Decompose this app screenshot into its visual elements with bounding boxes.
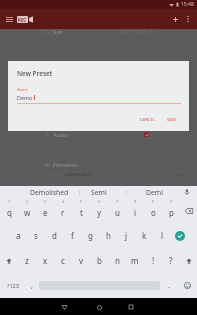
staticText: g [88,230,93,241]
button[interactable]: Demolished [0,186,79,198]
staticText: 1 [8,200,10,204]
button[interactable]: 7 [108,198,126,223]
staticText: . [168,281,170,291]
button[interactable]: Shift [180,248,197,273]
staticText: , [31,281,33,291]
button[interactable]: Size [0,27,197,36]
button[interactable]: 1 [0,198,18,223]
button[interactable]: 4 [54,198,72,223]
button[interactable]: x [36,248,54,273]
button[interactable]: Filename [0,161,197,177]
button[interactable]: Demi [126,186,177,198]
staticText: 2 [26,200,28,204]
staticText: ?123 [7,282,19,289]
staticText: d [52,230,57,241]
staticText: h [106,230,111,241]
button[interactable]: d [45,223,63,248]
staticText: r [61,207,65,218]
button[interactable]: l [153,223,171,248]
button[interactable]: 6 [90,198,108,223]
button[interactable]: j [117,223,135,248]
button[interactable]: Emoji [178,273,197,298]
button[interactable]: 5 [72,198,90,223]
button[interactable]: 8 [126,198,144,223]
button[interactable]: b [90,248,108,273]
staticText: z [25,255,29,266]
button[interactable]: More options [181,12,195,26]
staticText: CANCEL [140,117,155,122]
staticText: ? [169,255,173,266]
staticText: u [115,207,120,218]
staticText: New Preset [17,69,53,78]
button[interactable]: z [18,248,36,273]
staticText: j [125,230,128,241]
button[interactable]: f [63,223,81,248]
staticText: o [151,207,156,218]
button[interactable]: s [27,223,45,248]
staticText: x [43,255,48,266]
button[interactable]: ! [144,248,162,273]
button[interactable]: 3 [36,198,54,223]
staticText: y [97,207,102,218]
button[interactable]: Backspace [180,198,197,223]
staticText: Size [52,28,63,35]
button[interactable]: k [135,223,153,248]
staticText: Demolished [30,188,69,197]
staticText: Demo [17,94,33,101]
staticText: i [134,207,137,218]
staticText: Semi [91,188,107,197]
staticText: v [79,255,84,266]
button[interactable]: Shift [0,248,18,273]
staticText: c [61,255,65,266]
staticText: t [80,207,83,218]
button[interactable]: Enter [171,223,189,248]
button[interactable]: CANCEL [138,115,157,124]
button[interactable]: h [99,223,117,248]
staticText: l [161,230,164,241]
staticText: 3 [44,200,46,204]
staticText: 6 [98,200,100,204]
staticText: 0 [170,200,172,204]
button[interactable]: Recent apps [123,299,139,315]
button[interactable]: , [25,273,39,298]
button[interactable]: 9 [144,198,162,223]
staticText: 5 [80,200,82,204]
button[interactable]: Add preset [168,12,183,27]
button[interactable]: g [81,223,99,248]
button[interactable]: Semi [79,186,126,198]
staticText: SAVE [167,117,177,122]
staticText: Audio [53,131,69,138]
staticText: m [131,255,139,266]
button[interactable]: 0 [162,198,180,223]
staticText: Filename [53,161,77,168]
button[interactable]: Navigation menu [1,11,18,28]
button[interactable]: Home [91,299,107,315]
button[interactable]: 2 [18,198,36,223]
button[interactable]: SAVE [165,115,179,124]
staticText: a [16,230,21,241]
button[interactable]: c [54,248,72,273]
button[interactable]: ? [162,248,180,273]
staticText: s [34,230,38,241]
staticText: k [142,230,147,241]
staticText: 15:48 [181,1,194,8]
staticText: f [71,230,74,241]
staticText: 8 [134,200,136,204]
button[interactable]: Voice input [177,186,197,198]
staticText: p [169,207,174,218]
staticText: 4 [62,200,64,204]
staticText: 720 x 1080 [119,28,147,35]
button[interactable]: a [9,223,27,248]
staticText: get-rec-proj [65,171,92,177]
button[interactable]: . [160,273,178,298]
staticText: ! [152,255,155,266]
button[interactable]: n [108,248,126,273]
button[interactable]: ?123 [0,273,25,298]
button[interactable]: Audio [0,129,197,139]
button[interactable]: v [72,248,90,273]
button[interactable]: Back [56,299,72,315]
button[interactable]: m [126,248,144,273]
staticText: q [7,207,12,218]
